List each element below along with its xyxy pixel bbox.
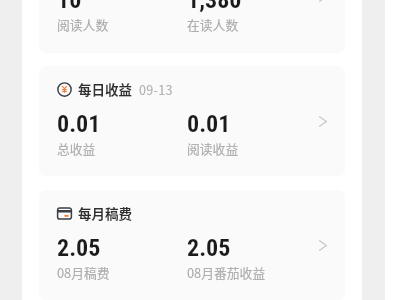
staticText: 0.01: [187, 110, 231, 138]
other: 查看每日收益: [310, 108, 336, 134]
staticText: 每日收益: [78, 79, 132, 99]
button[interactable]: 每日收益: [39, 66, 345, 176]
other: 查看阅读数据: [310, 0, 336, 9]
staticText: 2.05: [187, 234, 231, 262]
staticText: 0.01: [57, 110, 101, 138]
staticText: 09-13: [139, 80, 173, 98]
staticText: 在读人数: [187, 15, 239, 34]
staticText: 08月稿费: [57, 263, 110, 282]
button[interactable]: 每月稿费: [39, 190, 345, 300]
staticText: 阅读人数: [57, 15, 109, 34]
staticText: 10: [57, 0, 82, 14]
staticText: 2.05: [57, 234, 101, 262]
staticText: 1,380: [187, 0, 242, 14]
staticText: 阅读收益: [187, 139, 239, 158]
staticText: 每月稿费: [78, 203, 132, 223]
button[interactable]: 10: [39, 0, 345, 53]
other: 查看每月稿费: [310, 232, 336, 258]
staticText: 总收益: [57, 139, 96, 158]
staticText: 08月番茄收益: [187, 263, 266, 282]
